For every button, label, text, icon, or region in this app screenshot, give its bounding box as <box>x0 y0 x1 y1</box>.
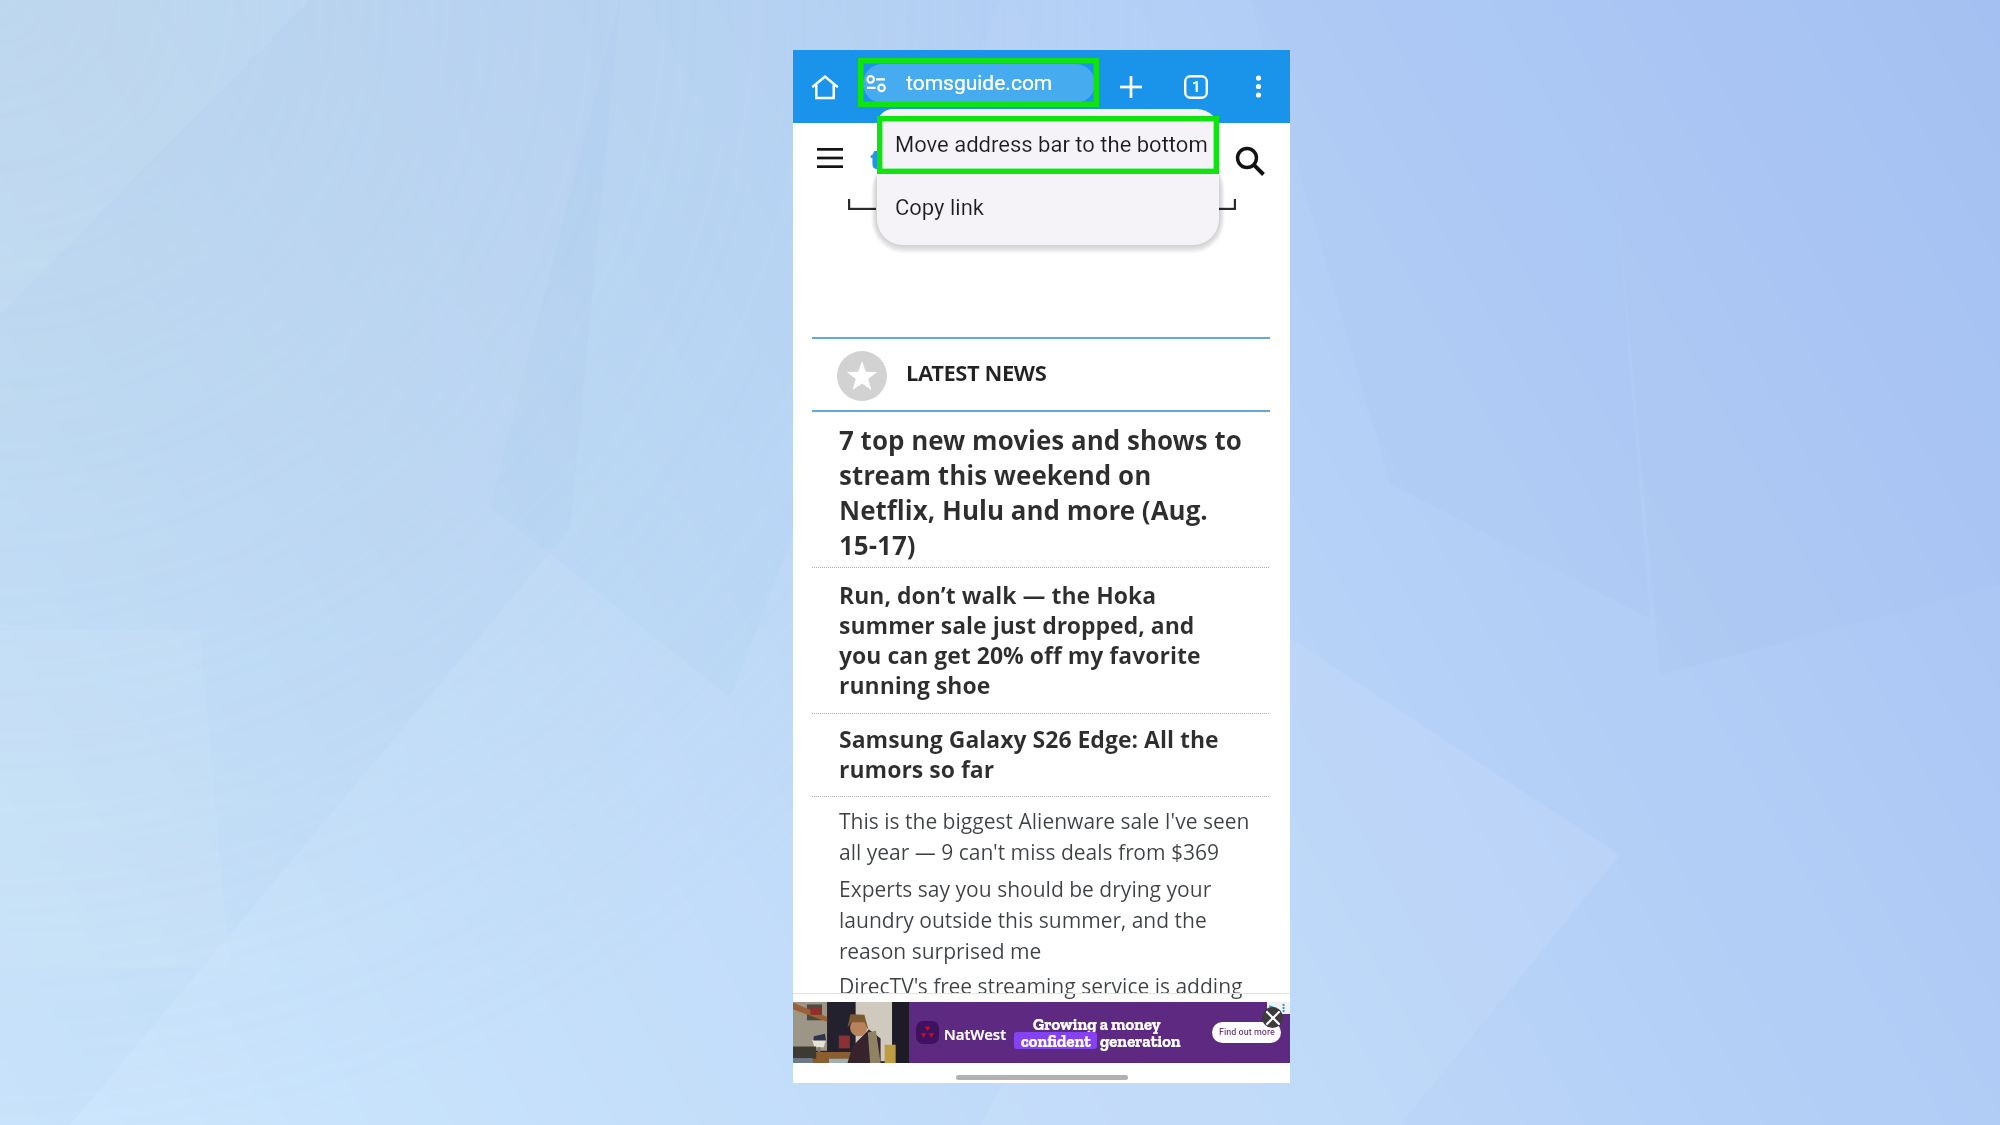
staticText: LATEST NEWS <box>906 357 1047 387</box>
button[interactable]: Run, don’t walk — the Hoka summer sale j… <box>839 580 1259 700</box>
staticText: Find out more <box>1219 1027 1275 1038</box>
button[interactable]: Samsung Galaxy S26 Edge: All the rumors … <box>839 724 1259 784</box>
staticText: Experts say you should be drying your la… <box>839 873 1212 966</box>
staticText: generation <box>1100 1031 1181 1051</box>
button[interactable]: DirecTV's free streaming service is addi… <box>839 970 1269 1001</box>
staticText: NatWest <box>944 1024 1007 1044</box>
staticText: tom's guide <box>870 140 1033 177</box>
staticText: Move address bar to the bottom <box>895 132 1208 158</box>
staticText: Copy link <box>895 195 984 221</box>
button[interactable]: Move address bar to the bottom <box>877 112 1219 177</box>
staticText: This is the biggest Alienware sale I've … <box>839 805 1250 867</box>
staticText: tomsguide.com <box>906 71 1053 96</box>
staticText: 1 <box>1192 78 1201 96</box>
button[interactable]: Copy link <box>877 178 1219 238</box>
button[interactable]: Find out more <box>1212 1022 1281 1043</box>
button[interactable]: Search <box>1235 146 1265 176</box>
button[interactable]: Experts say you should be drying your la… <box>839 873 1269 966</box>
button[interactable]: Open site menu <box>817 148 843 168</box>
button[interactable]: Home <box>802 64 847 109</box>
button[interactable]: More options <box>1236 64 1281 109</box>
staticText: Samsung Galaxy S26 Edge: All the rumors … <box>839 724 1219 784</box>
button[interactable]: This is the biggest Alienware sale I've … <box>839 805 1269 867</box>
staticText: confident <box>1021 1031 1091 1051</box>
staticText: 7 top new movies and shows to stream thi… <box>839 423 1242 563</box>
staticText: Run, don’t walk — the Hoka summer sale j… <box>839 580 1201 700</box>
button[interactable]: 7 top new movies and shows to stream thi… <box>839 423 1259 563</box>
button[interactable]: Close advertisement <box>1262 1007 1283 1028</box>
staticText: DirecTV's free streaming service is addi… <box>839 970 1243 1001</box>
button[interactable]: Switch tabs, 1 open <box>1173 64 1218 109</box>
staticText: Growing a money <box>1033 1014 1161 1034</box>
button[interactable]: New tab <box>1108 64 1153 109</box>
button[interactable]: tomsguide.com <box>863 64 1095 103</box>
